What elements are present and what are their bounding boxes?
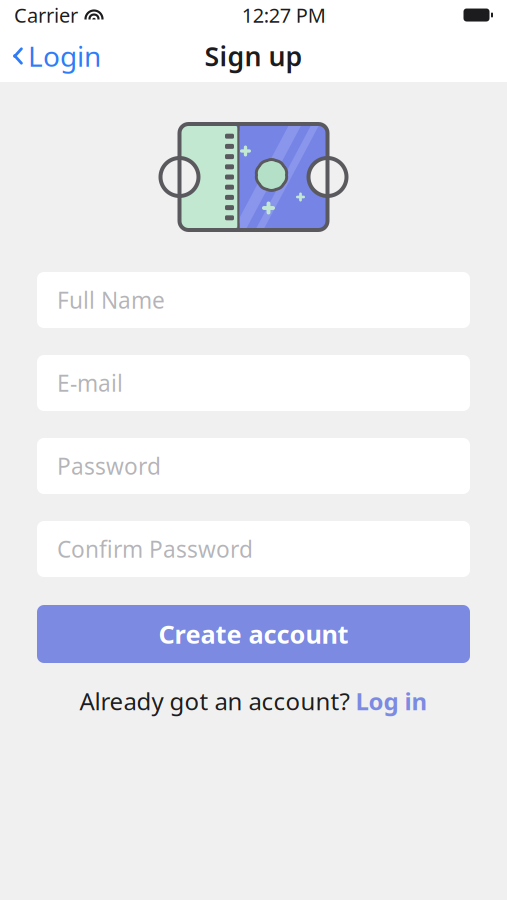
button[interactable]: Password [37,438,470,494]
staticText: 12:27 PM [242,2,326,28]
staticText: Already got an account? [79,685,349,717]
staticText: Full Name [57,285,165,315]
staticText: Password [57,451,161,481]
button[interactable]: Create account [37,605,470,663]
staticText: E-mail [57,368,123,398]
staticText: Login [28,37,101,75]
button[interactable]: Login [0,29,113,83]
button[interactable]: Confirm Password [37,521,470,577]
button[interactable]: E-mail [37,355,470,411]
staticText: Confirm Password [57,534,253,564]
button[interactable]: Full Name [37,272,470,328]
staticText: Create account [158,617,348,651]
button[interactable]: Already got an account? [69,677,437,725]
staticText: Sign up [204,38,302,74]
staticText: Log in [355,685,427,717]
staticText: Carrier [14,2,78,28]
